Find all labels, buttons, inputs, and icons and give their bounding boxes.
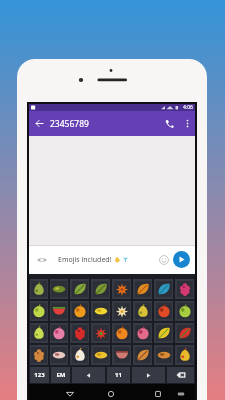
- button[interactable]: Emoji: [133, 345, 152, 365]
- button[interactable]: Emoji: [50, 323, 68, 343]
- button[interactable]: 123: [30, 367, 49, 383]
- button[interactable]: 11: [107, 367, 130, 383]
- button[interactable]: Previous page: [72, 367, 105, 383]
- button[interactable]: Emoji: [133, 301, 152, 321]
- button[interactable]: Send: [173, 251, 190, 268]
- button[interactable]: Emoji: [112, 301, 131, 321]
- button[interactable]: Emoji: [175, 345, 194, 365]
- button[interactable]: Emoji: [50, 345, 68, 365]
- button[interactable]: Next page: [132, 367, 165, 383]
- button[interactable]: Emoji: [112, 345, 131, 365]
- button[interactable]: Emoji: [154, 279, 173, 299]
- button[interactable]: Navigate up: [29, 111, 50, 136]
- button[interactable]: Insert emoji: [156, 252, 172, 268]
- button[interactable]: Emoji: [30, 323, 48, 343]
- button[interactable]: Emoji: [91, 323, 110, 343]
- button[interactable]: Emoji: [112, 279, 131, 299]
- button[interactable]: Emoji: [50, 279, 68, 299]
- button[interactable]: Emoji: [133, 279, 152, 299]
- button[interactable]: Emoji: [91, 301, 110, 321]
- button[interactable]: Emoji: [30, 345, 48, 365]
- button[interactable]: Home: [102, 384, 120, 400]
- staticText: 11: [115, 371, 122, 379]
- button[interactable]: Back: [61, 384, 79, 400]
- button[interactable]: Emoji: [154, 301, 173, 321]
- button[interactable]: Emoji: [70, 345, 89, 365]
- button[interactable]: Emoji: [91, 345, 110, 365]
- button[interactable]: Emoji: [175, 323, 194, 343]
- button[interactable]: EM: [51, 367, 70, 383]
- button[interactable]: Call: [159, 111, 180, 136]
- button[interactable]: Emoji: [91, 279, 110, 299]
- button[interactable]: Emoji: [70, 279, 89, 299]
- button[interactable]: Emoji: [112, 323, 131, 343]
- button[interactable]: Hide keyboard: [172, 384, 190, 400]
- button[interactable]: Emoji: [154, 323, 173, 343]
- staticText: 23456789: [50, 118, 89, 130]
- button[interactable]: Emoji: [30, 301, 48, 321]
- button[interactable]: Emoji: [70, 301, 89, 321]
- button[interactable]: Emoji: [133, 323, 152, 343]
- staticText: EM: [56, 371, 66, 379]
- button[interactable]: Backspace: [167, 367, 194, 383]
- button[interactable]: Recent apps: [149, 384, 167, 400]
- staticText: 123: [34, 371, 45, 379]
- button[interactable]: Emoji: [175, 279, 194, 299]
- button[interactable]: More options: [180, 111, 195, 136]
- button[interactable]: Emoji: [154, 345, 173, 365]
- button[interactable]: Emoji: [50, 301, 68, 321]
- button[interactable]: Emoji: [175, 301, 194, 321]
- staticText: 4:06: [183, 104, 193, 111]
- button[interactable]: Emoji: [30, 279, 48, 299]
- button[interactable]: Emoji: [70, 323, 89, 343]
- button[interactable]: Attach: [34, 252, 50, 268]
- staticText: Emojis included!: [58, 255, 112, 265]
